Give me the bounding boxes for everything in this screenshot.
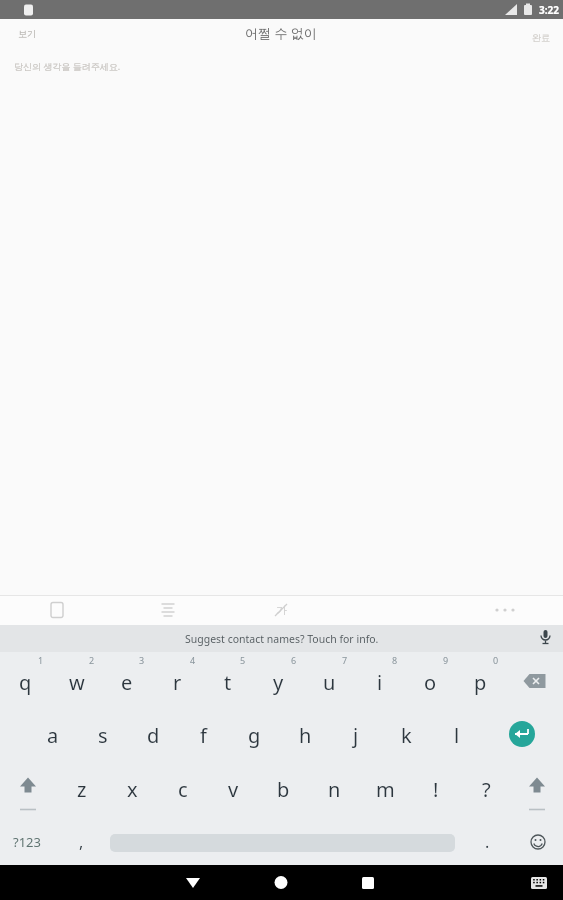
staticText: t — [224, 669, 232, 696]
button[interactable] — [148, 595, 188, 625]
staticText: 6 — [291, 654, 297, 666]
staticText: k — [401, 722, 412, 749]
button[interactable] — [351, 865, 385, 900]
button[interactable]: c — [157, 763, 208, 816]
staticText: p — [474, 669, 487, 696]
staticText: v — [228, 776, 239, 803]
staticText: o — [424, 669, 437, 696]
button[interactable]: d — [128, 709, 179, 762]
staticText: 8 — [392, 654, 398, 666]
button[interactable] — [261, 595, 301, 625]
button[interactable]: l — [431, 709, 482, 762]
staticText: 3:22 — [539, 3, 559, 17]
staticText: e — [121, 669, 133, 696]
button[interactable]: Suggest contact names? Touch for info. — [0, 625, 563, 652]
staticText: 4 — [190, 654, 196, 666]
staticText: 완료 — [532, 32, 550, 43]
button[interactable]: r — [152, 656, 203, 709]
button[interactable]: ?123 — [0, 815, 54, 869]
button[interactable]: b — [258, 763, 309, 816]
button[interactable]: x — [107, 763, 158, 816]
staticText: . — [485, 831, 490, 853]
staticText: 3 — [139, 654, 145, 666]
button[interactable]: u — [304, 656, 355, 709]
staticText: 9 — [443, 654, 449, 666]
staticText: 2 — [89, 654, 95, 666]
button[interactable]: h — [280, 709, 331, 762]
button[interactable]: 완료 — [524, 29, 558, 45]
staticText: n — [328, 776, 341, 803]
staticText: l — [454, 722, 460, 749]
staticText: g — [248, 722, 261, 749]
staticText: z — [77, 776, 87, 803]
staticText: 당신의 생각을 들려주세요. — [14, 60, 121, 72]
staticText: 5 — [240, 654, 246, 666]
button[interactable]: ! — [410, 763, 461, 816]
staticText: m — [376, 776, 395, 803]
staticText: f — [200, 722, 207, 749]
button[interactable]: y — [253, 656, 304, 709]
staticText: b — [277, 776, 290, 803]
staticText: h — [299, 722, 312, 749]
staticText: 7 — [342, 654, 348, 666]
button[interactable] — [532, 625, 559, 652]
button[interactable]: k — [381, 709, 432, 762]
staticText: s — [98, 722, 108, 749]
button[interactable]: t — [202, 656, 253, 709]
button[interactable]: 보기 — [12, 25, 42, 41]
button[interactable] — [264, 865, 298, 900]
button[interactable] — [511, 759, 563, 812]
button[interactable]: . — [462, 815, 512, 869]
button[interactable] — [485, 595, 525, 625]
button[interactable]: o — [405, 656, 456, 709]
staticText: i — [377, 669, 383, 696]
staticText: d — [147, 722, 160, 749]
staticText: 가 — [276, 603, 287, 617]
staticText: ?123 — [13, 833, 41, 851]
button[interactable]: , — [56, 815, 106, 869]
button[interactable]: a — [27, 709, 78, 762]
button[interactable]: i — [354, 656, 405, 709]
staticText: ! — [433, 776, 439, 803]
button[interactable]: f — [178, 709, 229, 762]
button[interactable] — [176, 865, 210, 900]
button[interactable]: m — [360, 763, 411, 816]
button[interactable]: j — [330, 709, 381, 762]
staticText: , — [79, 831, 84, 853]
staticText: 어쩔 수 없이 — [245, 24, 317, 42]
button[interactable]: w — [51, 656, 102, 709]
staticText: w — [69, 669, 85, 696]
button[interactable] — [506, 652, 563, 705]
button[interactable]: ? — [461, 763, 512, 816]
button[interactable]: z — [56, 763, 107, 816]
staticText: 0 — [493, 654, 499, 666]
staticText: y — [273, 669, 284, 696]
button[interactable]: p — [455, 656, 506, 709]
button[interactable]: n — [309, 763, 360, 816]
staticText: 보기 — [18, 28, 36, 39]
button[interactable] — [524, 865, 554, 900]
button[interactable] — [0, 759, 56, 812]
staticText: a — [47, 722, 59, 749]
staticText: x — [127, 776, 138, 803]
staticText: Suggest contact names? Touch for info. — [185, 632, 379, 646]
button[interactable]: s — [77, 709, 128, 762]
button[interactable] — [524, 828, 552, 856]
staticText: ? — [482, 776, 491, 803]
button[interactable]: v — [208, 763, 259, 816]
staticText: q — [19, 669, 32, 696]
staticText: j — [353, 722, 359, 749]
staticText: 1 — [38, 654, 44, 666]
button[interactable]: q — [0, 656, 51, 709]
staticText: u — [323, 669, 336, 696]
staticText: c — [178, 776, 188, 803]
button[interactable]: g — [229, 709, 280, 762]
button[interactable] — [509, 721, 535, 747]
staticText: r — [173, 669, 182, 696]
button[interactable] — [37, 595, 77, 625]
button[interactable]: e — [101, 656, 152, 709]
